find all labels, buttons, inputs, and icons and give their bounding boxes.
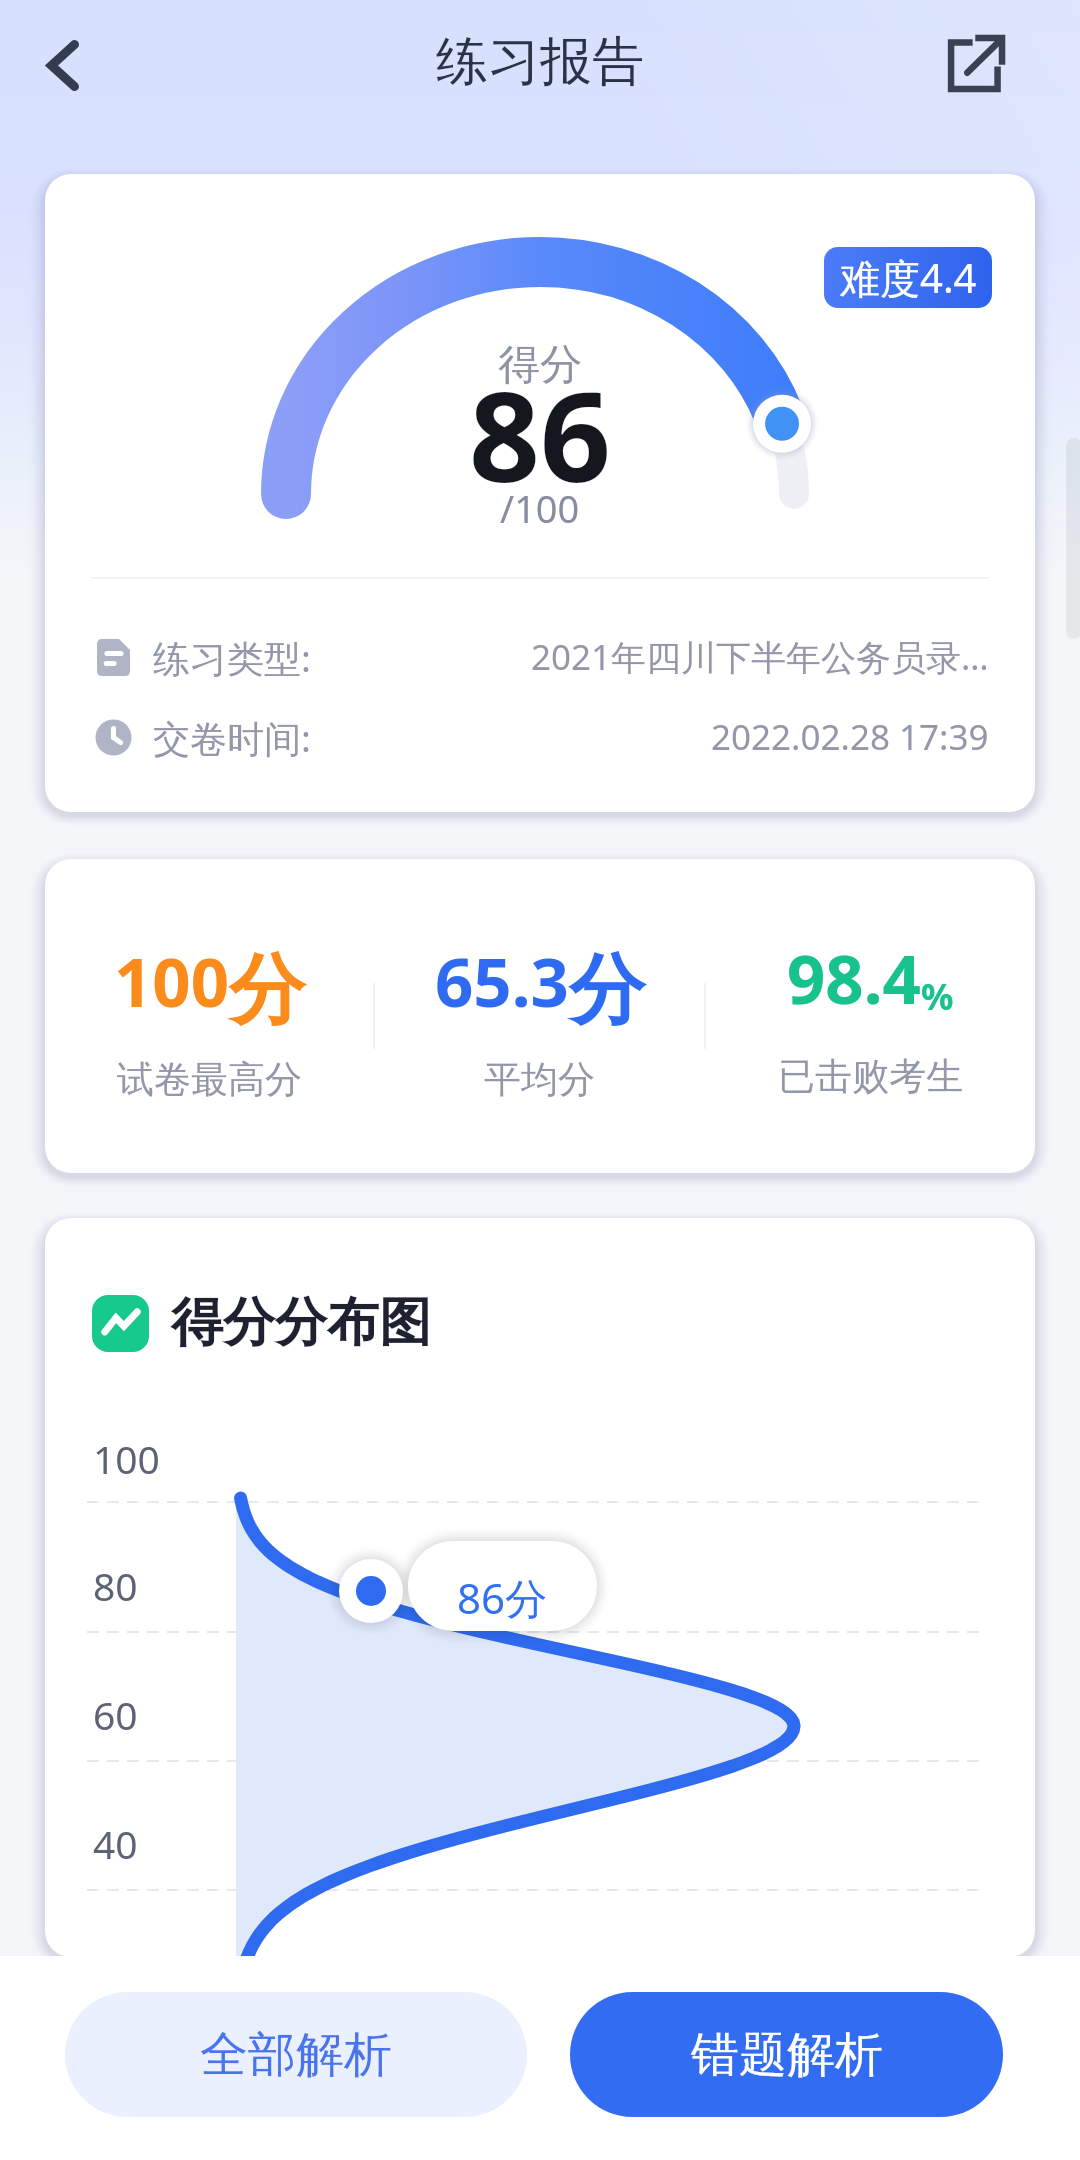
staticText: 2021年四川下半年公务员录…: [531, 633, 989, 681]
staticText: 100: [114, 935, 229, 1026]
button[interactable]: Back: [21, 23, 105, 107]
staticText: 试卷最高分: [117, 1056, 302, 1103]
staticText: 98.4: [787, 932, 921, 1023]
staticText: 100: [93, 1432, 160, 1485]
button[interactable]: 全部解析: [65, 1992, 527, 2117]
staticText: 80: [93, 1559, 138, 1612]
staticText: 86: [469, 349, 611, 518]
staticText: 65.3: [435, 935, 569, 1026]
button[interactable]: 98.4: [706, 932, 1035, 1100]
button[interactable]: 65.3: [375, 930, 704, 1103]
staticText: 交卷时间:: [153, 712, 311, 763]
staticText: 2022.02.28 17:39: [711, 713, 989, 761]
button[interactable]: 错题解析: [570, 1992, 1003, 2117]
button[interactable]: 100: [45, 930, 373, 1103]
staticText: 平均分: [484, 1056, 595, 1103]
button[interactable]: Share: [931, 19, 1021, 109]
staticText: 练习类型:: [153, 632, 311, 683]
staticText: 得分分布图: [171, 1290, 431, 1356]
staticText: 得分: [498, 339, 582, 392]
staticText: 分: [569, 943, 645, 1039]
staticText: /100: [500, 482, 580, 534]
staticText: 练习报告: [436, 29, 644, 95]
staticText: 86分: [457, 1569, 548, 1626]
staticText: 已击败考生: [778, 1053, 963, 1100]
staticText: %: [921, 972, 954, 1021]
staticText: 难度4.4: [840, 250, 977, 305]
staticText: 全部解析: [200, 2025, 392, 2085]
staticText: 错题解析: [691, 2025, 883, 2085]
staticText: 分: [229, 943, 305, 1039]
button[interactable]: 难度4.4: [824, 247, 992, 308]
staticText: 60: [93, 1688, 138, 1741]
staticText: 40: [93, 1817, 138, 1870]
